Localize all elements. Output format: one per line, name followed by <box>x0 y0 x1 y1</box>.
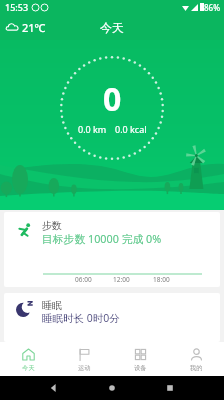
staticText: 0.0 km <box>78 123 107 135</box>
staticText: 目标步数 10000 完成 0% <box>42 231 162 246</box>
staticText: 15:53 <box>5 1 29 13</box>
staticText: 运动 <box>78 364 91 372</box>
button[interactable]: 设备 <box>112 342 168 376</box>
staticText: 今天 <box>100 20 124 35</box>
button[interactable]: 睡眠 <box>4 293 220 342</box>
staticText: 0 <box>103 77 122 121</box>
staticText: 12:00 <box>113 275 130 284</box>
staticText: 18:00 <box>153 275 170 284</box>
staticText: 步数 <box>42 219 62 232</box>
button[interactable]: 步数 <box>4 212 220 287</box>
staticText: 今天 <box>22 364 35 372</box>
staticText: 06:00 <box>75 275 92 284</box>
staticText: 我的 <box>190 364 203 372</box>
button[interactable]: 我的 <box>168 342 224 376</box>
staticText: 21℃ <box>22 20 46 35</box>
button[interactable]: 今天 <box>0 342 56 376</box>
staticText: 0.0 kcal <box>115 123 147 135</box>
staticText: 睡眠时长 0时0分 <box>42 311 120 325</box>
staticText: 设备 <box>134 364 147 372</box>
button[interactable]: 运动 <box>56 342 112 376</box>
staticText: 睡眠 <box>42 299 62 312</box>
staticText: 86% <box>204 2 220 13</box>
